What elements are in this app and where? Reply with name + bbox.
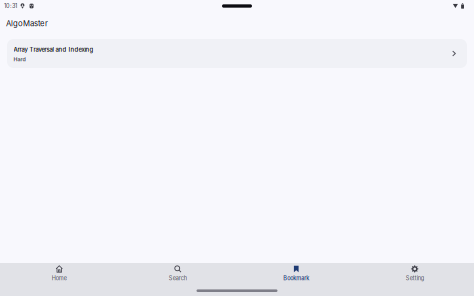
button[interactable]: Array Traversal and Indexing [7,39,467,68]
staticText: Bookmark [283,275,309,281]
staticText: Setting [406,275,424,281]
staticText: 10:31 [4,3,17,9]
button[interactable]: Bookmark [237,259,355,281]
button[interactable]: Search [118,259,237,281]
button[interactable]: Home [0,259,118,281]
staticText: AlgoMaster [6,19,48,28]
button[interactable]: Setting [355,259,474,281]
staticText: Home [52,275,67,281]
staticText: Hard [13,56,25,63]
staticText: Array Traversal and Indexing [13,46,93,53]
staticText: Search [169,275,187,281]
